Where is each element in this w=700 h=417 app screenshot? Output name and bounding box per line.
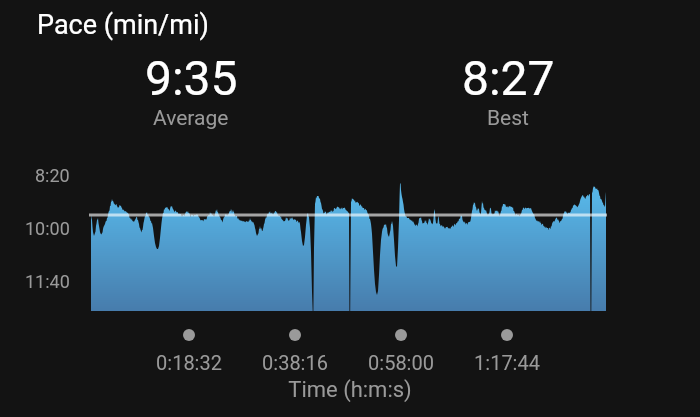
button[interactable]: Pace over time chart xyxy=(20,150,620,320)
button[interactable]: 9:35 xyxy=(116,50,266,131)
staticText: Time (h:m:s) xyxy=(250,377,450,403)
button[interactable]: 0:18:32 xyxy=(129,326,249,371)
button[interactable]: Pace (min/mi) xyxy=(30,4,220,42)
staticText: Best xyxy=(487,106,529,131)
staticText: Pace (min/mi) xyxy=(37,9,209,41)
staticText: 0:18:32 xyxy=(129,351,249,374)
button[interactable]: 1:17:44 xyxy=(447,326,567,371)
staticText: 11:40 xyxy=(25,271,70,292)
staticText: 8:27 xyxy=(462,50,555,106)
button[interactable]: 0:58:00 xyxy=(341,326,461,371)
staticText: 1:17:44 xyxy=(447,351,567,374)
staticText: Average xyxy=(153,106,229,131)
button[interactable]: 8:27 xyxy=(433,50,583,131)
staticText: 0:38:16 xyxy=(235,351,355,374)
staticText: 10:00 xyxy=(25,218,70,239)
staticText: 9:35 xyxy=(145,50,238,106)
staticText: 0:58:00 xyxy=(341,351,461,374)
staticText: 8:20 xyxy=(35,165,70,186)
button[interactable]: 0:38:16 xyxy=(235,326,355,371)
